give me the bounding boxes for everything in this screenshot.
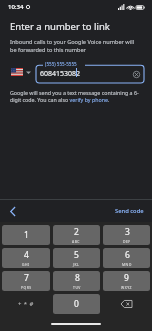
staticText: + * # — [18, 300, 34, 308]
staticText: 9 — [124, 272, 129, 284]
button[interactable]: Clear — [133, 71, 140, 78]
staticText: DEF — [123, 239, 131, 244]
button[interactable]: Backspace — [103, 294, 150, 314]
staticText: 4 — [24, 249, 29, 261]
button[interactable]: (555) 555-5555 — [36, 61, 144, 83]
staticText: Inbound calls to your Google Voice numbe… — [10, 38, 140, 54]
staticText: Send code — [115, 207, 144, 215]
staticText: 0 — [74, 298, 79, 310]
button[interactable]: 0 — [53, 294, 100, 314]
button[interactable]: 1 — [2, 225, 50, 245]
staticText: PQRS — [21, 285, 32, 290]
button[interactable]: 6 — [103, 248, 150, 268]
staticText: WXYZ — [121, 285, 132, 290]
button[interactable]: 9 — [103, 271, 150, 291]
button[interactable]: Back — [5, 203, 21, 219]
staticText: 7 — [24, 272, 29, 284]
staticText: (555) 555-5555 — [45, 61, 77, 67]
staticText: 3 — [125, 226, 130, 238]
button[interactable]: Send code — [107, 203, 152, 219]
button[interactable]: Select country — [10, 66, 32, 78]
button[interactable]: 4 — [2, 248, 50, 268]
staticText: 5 — [74, 249, 79, 261]
staticText: TUV — [73, 285, 81, 290]
staticText: Google will send you a text message cont… — [10, 89, 140, 104]
staticText: 10:34 — [8, 3, 24, 11]
staticText: GHI — [22, 262, 30, 267]
staticText: 6084153082 — [40, 69, 133, 79]
staticText: 8 — [75, 272, 80, 284]
button[interactable]: 5 — [53, 248, 100, 268]
staticText: JKL — [73, 262, 80, 267]
staticText: ABC — [72, 239, 81, 244]
staticText: 2 — [74, 226, 79, 238]
button[interactable]: 7 — [2, 271, 50, 291]
button[interactable]: 3 — [103, 225, 150, 245]
staticText: 1 — [24, 229, 29, 241]
button[interactable]: 8 — [53, 271, 100, 291]
button[interactable]: Symbols — [2, 294, 50, 314]
staticText: MNO — [122, 262, 132, 267]
button[interactable]: 2 — [53, 225, 100, 245]
staticText: 6 — [125, 249, 130, 261]
staticText: Enter a number to link — [10, 20, 110, 33]
